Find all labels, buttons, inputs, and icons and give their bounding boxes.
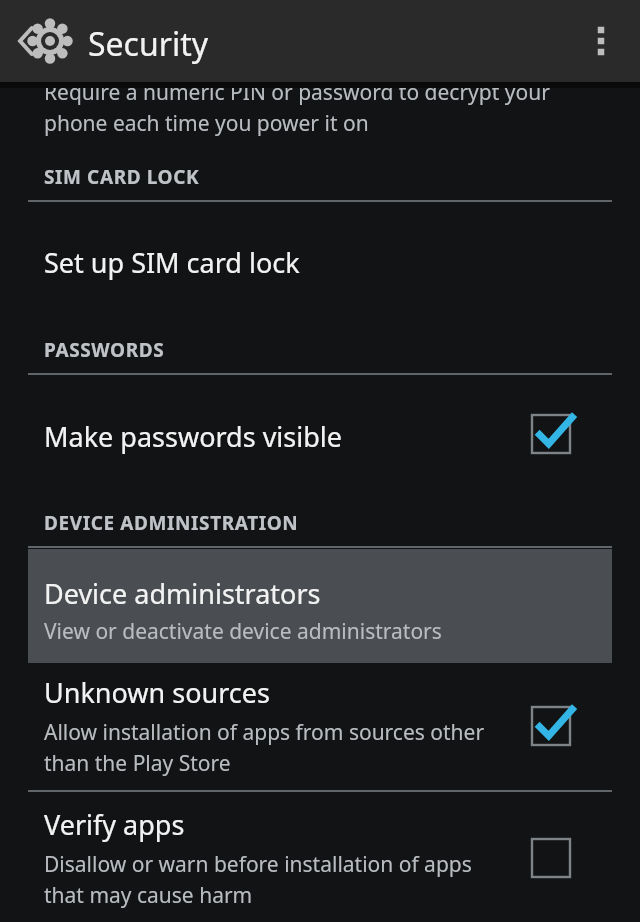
staticText: DEVICE ADMINISTRATION bbox=[44, 510, 299, 536]
staticText: View or deactivate device administrators bbox=[44, 617, 442, 646]
button[interactable]: Navigate up bbox=[0, 0, 76, 82]
staticText: Disallow or warn before installation of … bbox=[44, 850, 514, 909]
button[interactable] bbox=[28, 549, 612, 663]
staticText: Unknown sources bbox=[44, 674, 270, 711]
staticText: Verify apps bbox=[44, 806, 185, 843]
button[interactable]: Verify apps bbox=[526, 833, 576, 883]
staticText: Set up SIM card lock bbox=[44, 244, 300, 281]
staticText: Device administrators bbox=[44, 575, 321, 612]
staticText: Allow installation of apps from sources … bbox=[44, 718, 514, 777]
button[interactable] bbox=[0, 792, 640, 922]
staticText: Require a numeric PIN or password to dec… bbox=[44, 78, 564, 137]
staticText: PASSWORDS bbox=[44, 337, 165, 363]
button[interactable]: Unknown sources bbox=[526, 701, 576, 751]
button[interactable]: More options bbox=[562, 0, 640, 82]
button[interactable] bbox=[0, 668, 640, 790]
button[interactable] bbox=[0, 210, 640, 310]
button[interactable]: Make passwords visible bbox=[526, 409, 576, 459]
staticText: SIM CARD LOCK bbox=[44, 164, 200, 190]
staticText: Make passwords visible bbox=[44, 418, 343, 455]
staticText: Security bbox=[88, 22, 209, 66]
button[interactable] bbox=[0, 383, 640, 483]
